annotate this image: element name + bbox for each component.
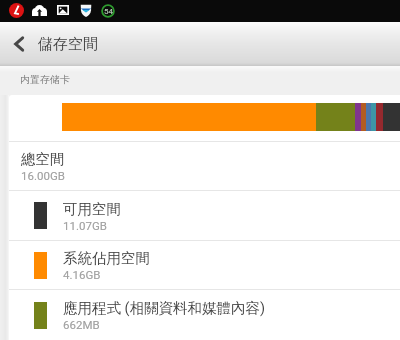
button[interactable]: 系統佔用空間: [9, 241, 400, 289]
button[interactable]: 可用空間: [9, 191, 400, 240]
staticText: 11.07GB: [63, 219, 107, 232]
staticText: 儲存空間: [38, 35, 98, 54]
staticText: 54: [104, 7, 113, 16]
staticText: 系統佔用空間: [63, 249, 150, 267]
button[interactable]: Back: [0, 22, 400, 66]
staticText: 應用程式 (相關資料和媒體內容): [63, 299, 266, 317]
button[interactable]: 總空間: [9, 142, 400, 190]
other: Back: [9, 34, 29, 54]
staticText: 總空間: [21, 150, 65, 168]
staticText: 4.16GB: [63, 268, 101, 281]
staticText: 可用空間: [63, 200, 121, 218]
staticText: 16.00GB: [21, 169, 65, 182]
staticText: 662MB: [63, 318, 100, 331]
staticText: 内置存储卡: [20, 73, 70, 86]
button[interactable]: 應用程式 (相關資料和媒體內容): [9, 290, 400, 340]
